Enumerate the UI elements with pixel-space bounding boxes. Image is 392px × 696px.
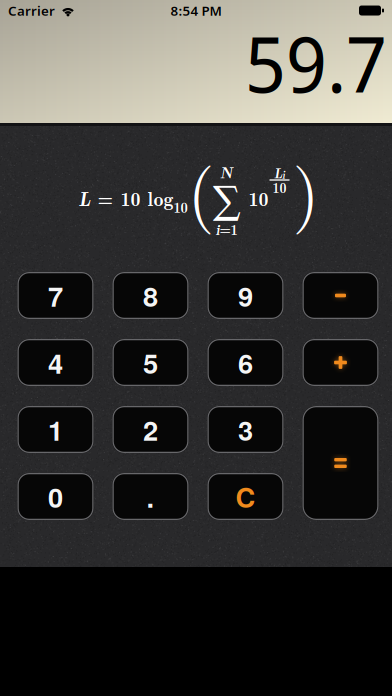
staticText: 4: [48, 343, 63, 382]
button[interactable]: 2: [112, 406, 188, 453]
staticText: .: [146, 477, 154, 516]
button[interactable]: 3: [207, 406, 283, 453]
staticText: =1: [219, 218, 237, 239]
staticText: ∑: [210, 186, 242, 220]
staticText: 59.7: [245, 11, 387, 115]
staticText: 8: [143, 276, 158, 315]
staticText: 10: [272, 177, 286, 197]
staticText: 7: [48, 276, 63, 315]
button[interactable]: 5: [112, 339, 188, 386]
staticText: L: [78, 183, 90, 212]
staticText: N: [220, 160, 233, 183]
staticText: i: [282, 167, 285, 182]
button[interactable]: 9: [207, 272, 283, 319]
button[interactable]: 1: [17, 406, 93, 453]
staticText: ): [292, 139, 319, 238]
staticText: 2: [143, 410, 158, 449]
button[interactable]: 4: [17, 339, 93, 386]
staticText: L: [274, 162, 282, 182]
button[interactable]: plus: [302, 339, 378, 386]
staticText: 0: [48, 477, 63, 516]
button[interactable]: 6: [207, 339, 283, 386]
staticText: 10: [248, 183, 268, 212]
staticText: 9: [238, 276, 253, 315]
button[interactable]: minus: [302, 272, 378, 319]
staticText: 1: [48, 410, 63, 449]
staticText: 10: [173, 196, 187, 217]
staticText: 6: [238, 343, 253, 382]
staticText: 8:54 PM: [170, 2, 221, 19]
staticText: i: [215, 218, 219, 239]
button[interactable]: equals: [302, 406, 378, 520]
staticText: = 10 log: [90, 183, 173, 212]
button[interactable]: 7: [17, 272, 93, 319]
button[interactable]: C: [207, 473, 283, 520]
staticText: Carrier: [8, 2, 55, 19]
button[interactable]: .: [112, 473, 188, 520]
staticText: C: [235, 477, 255, 516]
button[interactable]: 0: [17, 473, 93, 520]
staticText: 3: [238, 410, 253, 449]
staticText: 5: [143, 343, 158, 382]
button[interactable]: 8: [112, 272, 188, 319]
staticText: (: [187, 139, 214, 238]
